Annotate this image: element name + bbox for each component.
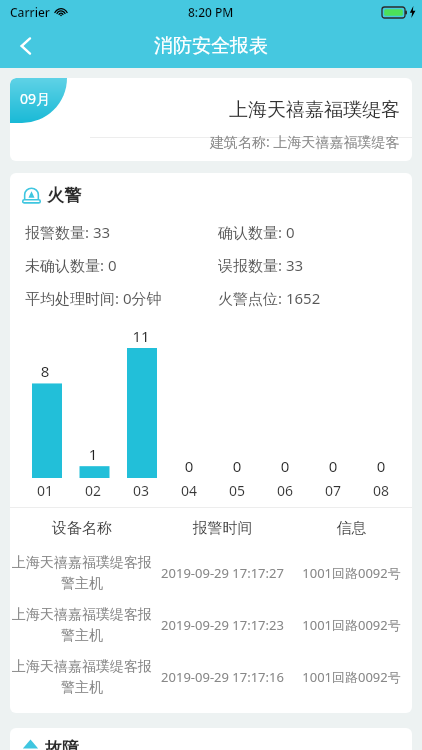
staticText: 报警时间	[154, 519, 291, 538]
staticText: 消防安全报表	[154, 34, 268, 58]
staticText: 0	[176, 456, 202, 476]
staticText: 8	[32, 361, 58, 381]
button[interactable]: Back	[4, 24, 48, 68]
staticText: 1001回路0092号	[291, 564, 412, 582]
button[interactable]: 上海天禧嘉福璞缇客报警主机	[10, 547, 412, 599]
staticText: 上海天禧嘉福璞缇客	[229, 98, 400, 122]
staticText: 0	[224, 456, 250, 476]
staticText: 08	[368, 481, 394, 500]
staticText: 火警点位: 1652	[218, 288, 412, 308]
staticText: 误报数量: 33	[218, 255, 412, 275]
staticText: 2019-09-29 17:17:23	[154, 616, 291, 634]
staticText: 07	[320, 481, 346, 500]
staticText: 故障	[45, 738, 79, 750]
staticText: 02	[80, 481, 106, 500]
staticText: 设备名称	[10, 519, 154, 538]
staticText: 04	[176, 481, 202, 500]
staticText: 11	[128, 326, 154, 346]
staticText: 0	[368, 456, 394, 476]
staticText: 2019-09-29 17:17:27	[154, 564, 291, 582]
staticText: 1001回路0092号	[291, 616, 412, 634]
staticText: 平均处理时间: 0分钟	[25, 288, 218, 308]
staticText: 报警数量: 33	[25, 222, 218, 242]
button[interactable]: 09月	[10, 78, 412, 161]
button[interactable]: 上海天禧嘉福璞缇客报警主机	[10, 599, 412, 651]
staticText: 火警	[47, 185, 81, 206]
staticText: 0	[272, 456, 298, 476]
staticText: 0	[320, 456, 346, 476]
staticText: 上海天禧嘉福璞缇客报警主机	[12, 554, 152, 592]
staticText: 未确认数量: 0	[25, 255, 218, 275]
staticText: 信息	[291, 519, 412, 538]
staticText: 03	[128, 481, 154, 500]
staticText: 2019-09-29 17:17:16	[154, 668, 291, 686]
staticText: 建筑名称: 上海天禧嘉福璞缇客	[210, 132, 400, 151]
button[interactable]: 上海天禧嘉福璞缇客报警主机	[10, 651, 412, 703]
staticText: 06	[272, 481, 298, 500]
button[interactable]: 故障	[10, 728, 412, 750]
staticText: 确认数量: 0	[218, 222, 412, 242]
staticText: 8:20 PM	[188, 4, 234, 20]
staticText: 09月	[20, 89, 51, 108]
staticText: 上海天禧嘉福璞缇客报警主机	[12, 606, 152, 644]
staticText: 1	[80, 444, 106, 464]
staticText: 上海天禧嘉福璞缇客报警主机	[12, 658, 152, 696]
staticText: 1001回路0092号	[291, 668, 412, 686]
staticText: 01	[32, 481, 58, 500]
staticText: 05	[224, 481, 250, 500]
staticText: Carrier	[10, 4, 50, 20]
